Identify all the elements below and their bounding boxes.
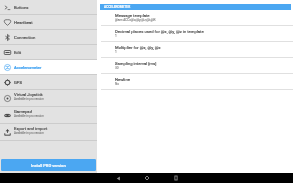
staticText: Available in pro version <box>14 114 44 117</box>
button[interactable]: Virtual Joystick <box>0 90 97 107</box>
button[interactable]: Recents <box>171 173 181 183</box>
staticText: 1 <box>115 34 117 38</box>
staticText: 1 <box>115 50 117 54</box>
staticText: 1 <box>115 50 117 54</box>
button[interactable]: Edit <box>0 45 97 60</box>
button[interactable]: Connection <box>0 30 97 45</box>
staticText: Available in pro version <box>14 97 44 100</box>
staticText: Buttons <box>14 5 29 10</box>
staticText: Heartbeat <box>14 20 33 25</box>
button[interactable]: Newline <box>97 74 293 90</box>
staticText: Connection <box>14 35 36 40</box>
button[interactable]: Decimal places used for @x, @y, @z in te… <box>97 26 293 42</box>
staticText: No <box>115 82 120 86</box>
button[interactable]: GPS <box>0 75 97 90</box>
staticText: Buttons <box>14 5 29 10</box>
staticText: Virtual Joystick <box>14 92 43 97</box>
staticText: Edit <box>14 50 22 55</box>
staticText: Available in pro version <box>14 131 44 134</box>
button[interactable]: Heartbeat <box>0 15 97 30</box>
staticText: Sampling interval [ms] <box>115 61 157 66</box>
staticText: Available in pro version <box>14 131 44 134</box>
staticText: 30 <box>115 66 119 70</box>
staticText: No <box>115 82 120 86</box>
staticText: Accelerometer <box>14 65 42 70</box>
staticText: Decimal places used for @x, @y, @z in te… <box>115 29 204 34</box>
button[interactable]: Multiplier for @x, @y, @z <box>97 42 293 58</box>
staticText: GPS <box>14 80 22 85</box>
button[interactable]: Accelerometer <box>0 60 97 75</box>
staticText: Accelerometer <box>14 65 42 70</box>
staticText: Gamepad <box>14 109 33 114</box>
staticText: Connection <box>14 35 36 40</box>
button[interactable]: Back <box>113 173 123 183</box>
staticText: Export and import <box>14 126 48 131</box>
staticText: Install PRO version <box>31 163 66 168</box>
staticText: ACCELEROMETER <box>104 5 131 9</box>
button[interactable]: Gamepad <box>0 107 97 124</box>
staticText: GPS <box>14 80 22 85</box>
staticText: Export and import <box>14 126 48 131</box>
staticText: Message template <box>115 13 150 18</box>
staticText: @am:ACC=@x;@y;@z;@i;@R <box>115 18 156 22</box>
staticText: Decimal places used for @x, @y, @z in te… <box>115 29 204 34</box>
staticText: Newline <box>115 77 130 82</box>
staticText: Edit <box>14 50 22 55</box>
staticText: Virtual Joystick <box>14 92 43 97</box>
button[interactable]: Message template <box>97 10 293 26</box>
staticText: Available in pro version <box>14 97 44 100</box>
button[interactable]: Install PRO version <box>1 159 96 171</box>
button[interactable]: Sampling interval [ms] <box>97 58 293 74</box>
staticText: Newline <box>115 77 130 82</box>
staticText: Gamepad <box>14 109 33 114</box>
staticText: 30 <box>115 66 119 70</box>
staticText: Multiplier for @x, @y, @z <box>115 45 161 50</box>
staticText: Multiplier for @x, @y, @z <box>115 45 161 50</box>
staticText: Available in pro version <box>14 114 44 117</box>
button[interactable]: Export and import <box>0 124 97 141</box>
staticText: 1 <box>115 34 117 38</box>
staticText: @am:ACC=@x;@y;@z;@i;@R <box>115 18 156 22</box>
staticText: Message template <box>115 13 150 18</box>
button[interactable]: Buttons <box>0 0 97 15</box>
button[interactable]: Home <box>142 173 152 183</box>
staticText: Heartbeat <box>14 20 33 25</box>
staticText: Sampling interval [ms] <box>115 61 157 66</box>
